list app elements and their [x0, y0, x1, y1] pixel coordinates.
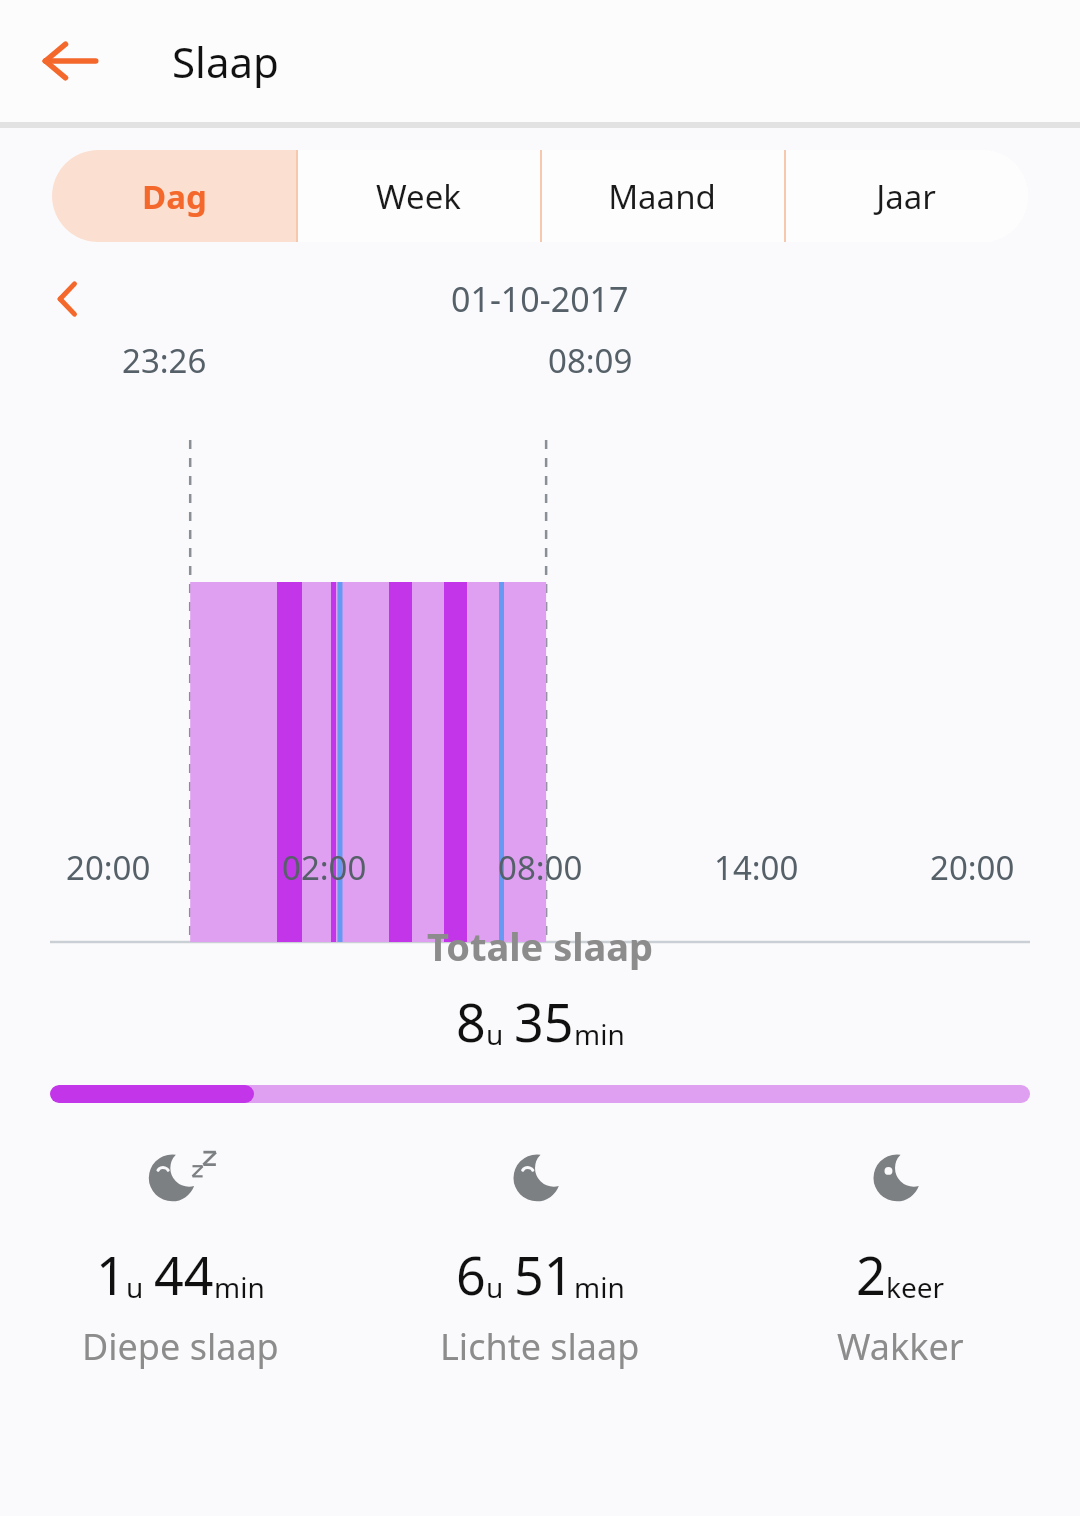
staticText: 1 — [96, 1239, 126, 1310]
staticText: 6 — [456, 1239, 486, 1310]
button[interactable]: 1 — [0, 1135, 360, 1371]
staticText: min — [574, 1268, 625, 1306]
staticText: keer — [886, 1268, 945, 1306]
staticText: Jaar — [876, 174, 936, 219]
staticText: 08:00 — [498, 845, 583, 890]
staticText: u — [486, 1268, 504, 1306]
button[interactable]: Previous day — [40, 271, 96, 327]
staticText: Diepe slaap — [82, 1322, 279, 1371]
staticText: 35 — [514, 986, 574, 1057]
staticText: 01-10-2017 — [451, 276, 629, 322]
staticText: Lichte slaap — [440, 1322, 640, 1371]
staticText: Slaap — [172, 33, 279, 90]
staticText: Week — [376, 174, 461, 219]
button[interactable]: 2 — [720, 1135, 1080, 1371]
button[interactable]: Dag — [52, 150, 296, 242]
staticText: 08:09 — [548, 338, 633, 383]
button[interactable]: Back — [34, 25, 106, 97]
staticText: Dag — [142, 174, 207, 219]
staticText: 20:00 — [930, 845, 1015, 890]
staticText: 44 — [154, 1239, 214, 1310]
staticText: 02:00 — [282, 845, 367, 890]
button[interactable]: Jaar — [784, 150, 1028, 242]
button[interactable]: Week — [296, 150, 540, 242]
staticText: 51 — [514, 1239, 574, 1310]
staticText: min — [574, 1015, 625, 1053]
staticText: Wakker — [837, 1322, 964, 1371]
staticText: u — [486, 1015, 504, 1053]
staticText: 23:26 — [122, 338, 207, 383]
staticText: min — [214, 1268, 265, 1306]
staticText: 14:00 — [714, 845, 799, 890]
staticText: u — [126, 1268, 144, 1306]
staticText: 20:00 — [66, 845, 151, 890]
staticText: Totale slaap — [427, 920, 654, 972]
staticText: Maand — [608, 174, 716, 219]
staticText: 8 — [456, 986, 486, 1057]
staticText: 2 — [856, 1239, 886, 1310]
button[interactable]: 6 — [360, 1135, 720, 1371]
button[interactable]: Maand — [540, 150, 784, 242]
